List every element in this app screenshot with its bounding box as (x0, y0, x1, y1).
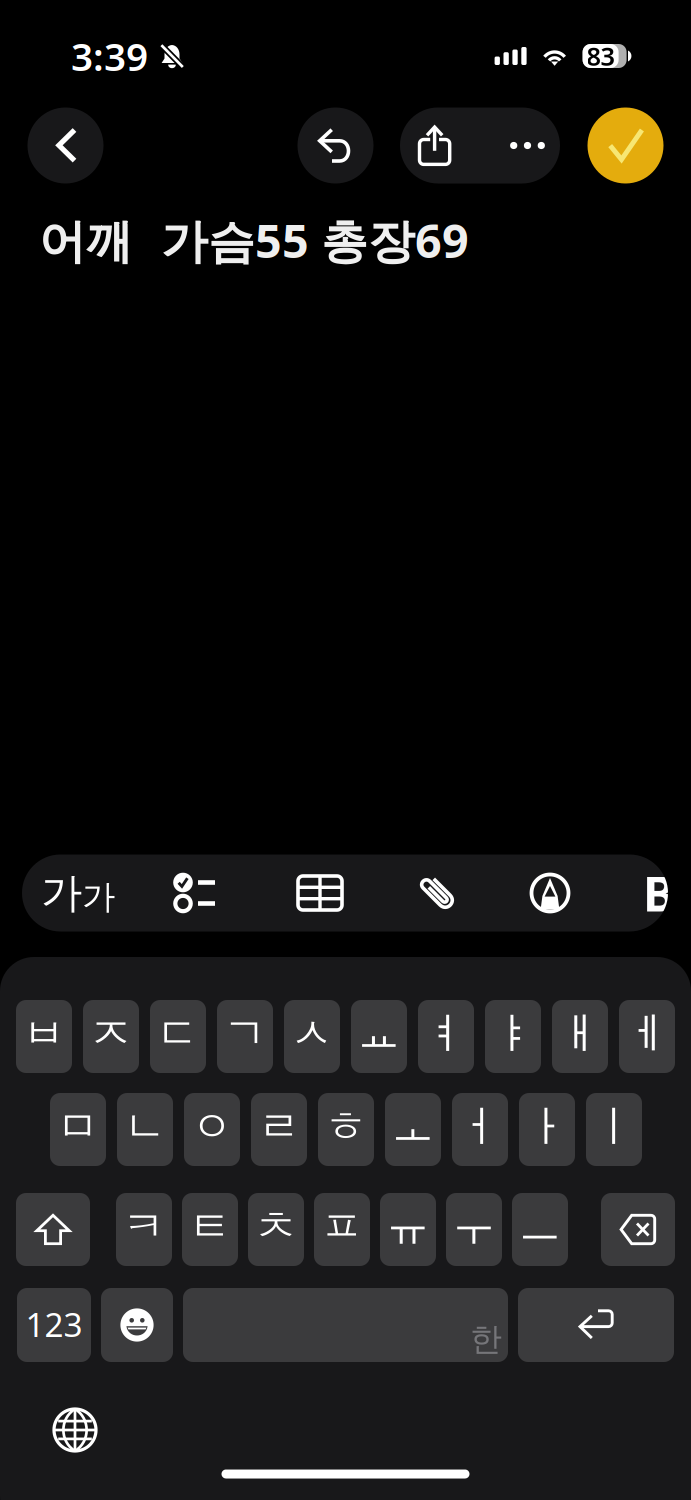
button[interactable]: ㅓ (452, 1093, 508, 1166)
button[interactable]: Checklist (139, 854, 249, 931)
staticText: 한 (470, 1320, 502, 1359)
button[interactable]: ㅏ (519, 1093, 575, 1166)
staticText: 123 (25, 1302, 82, 1346)
button[interactable]: 123 (17, 1288, 91, 1362)
button[interactable]: ㅔ (619, 1000, 675, 1073)
staticText: 가 (82, 876, 115, 917)
staticText: ㅜ (452, 1200, 495, 1253)
button[interactable]: ㅜ (446, 1193, 502, 1266)
staticText: ㅍ (320, 1200, 363, 1253)
button[interactable]: Undo (297, 107, 373, 183)
staticText: ㅔ (625, 1007, 668, 1060)
staticText: ㄹ (257, 1100, 300, 1153)
button[interactable]: ㅈ (83, 1000, 139, 1073)
staticText: ㄷ (156, 1007, 199, 1060)
button[interactable]: ㅐ (552, 1000, 608, 1073)
button[interactable]: ㅗ (385, 1093, 441, 1166)
button[interactable]: ㅍ (314, 1193, 370, 1266)
button[interactable]: Table (265, 854, 375, 931)
button[interactable]: More (491, 107, 563, 183)
button[interactable]: ㄹ (251, 1093, 307, 1166)
staticText: 가 (41, 868, 82, 918)
staticText: ㅗ (391, 1100, 434, 1153)
staticText: 어깨 가슴55 총장69 (39, 209, 469, 271)
staticText: ㅈ (89, 1007, 132, 1060)
button[interactable]: Emoji (101, 1288, 173, 1362)
button[interactable]: Bold (629, 854, 689, 931)
button[interactable]: Done (587, 107, 663, 183)
button[interactable]: ㅇ (184, 1093, 240, 1166)
staticText: B (643, 861, 675, 925)
button[interactable]: ㅊ (248, 1193, 304, 1266)
button[interactable]: ㅌ (182, 1193, 238, 1266)
button[interactable]: ㄷ (150, 1000, 206, 1073)
button[interactable]: ㄱ (217, 1000, 273, 1073)
staticText: 3:39 (71, 30, 148, 82)
staticText: ㅅ (290, 1007, 333, 1060)
button[interactable]: Delete (601, 1193, 675, 1266)
staticText: ㅑ (491, 1007, 534, 1060)
staticText: ㅐ (558, 1007, 601, 1060)
button[interactable]: ㅕ (418, 1000, 474, 1073)
button[interactable]: ㅎ (318, 1093, 374, 1166)
staticText: ㅛ (357, 1007, 400, 1060)
staticText: ㅊ (254, 1200, 297, 1253)
button[interactable]: ㅑ (485, 1000, 541, 1073)
button[interactable]: ㅠ (380, 1193, 436, 1266)
button[interactable]: ㅂ (16, 1000, 72, 1073)
button[interactable]: ㄴ (117, 1093, 173, 1166)
button[interactable]: ㅁ (50, 1093, 106, 1166)
button[interactable]: ㅅ (284, 1000, 340, 1073)
staticText: ㅌ (188, 1200, 231, 1253)
staticText: ㄱ (223, 1007, 266, 1060)
staticText: ㅋ (122, 1200, 165, 1253)
button[interactable]: Return (518, 1288, 674, 1362)
button[interactable]: Text format (23, 854, 133, 931)
staticText: ㅎ (324, 1100, 367, 1153)
staticText: ㅁ (56, 1100, 99, 1153)
button[interactable]: Back (27, 107, 103, 183)
staticText: ㅂ (22, 1007, 65, 1060)
button[interactable]: Markup (495, 854, 605, 931)
staticText: ㅕ (424, 1007, 467, 1060)
staticText: ㅣ (592, 1100, 635, 1153)
staticText: ㄴ (123, 1100, 166, 1153)
button[interactable]: ㅣ (586, 1093, 642, 1166)
button[interactable]: ㅋ (116, 1193, 172, 1266)
staticText: ㅡ (518, 1200, 561, 1253)
button[interactable]: Space (183, 1288, 508, 1362)
staticText: ㅏ (525, 1100, 568, 1153)
button[interactable]: ㅛ (351, 1000, 407, 1073)
button[interactable]: Shift (16, 1193, 90, 1266)
staticText: ㅠ (386, 1200, 429, 1253)
staticText: 83 (587, 39, 615, 73)
button[interactable]: Share (396, 107, 474, 183)
button[interactable]: Switch keyboard (45, 1400, 105, 1460)
button[interactable]: ㅡ (512, 1193, 568, 1266)
staticText: ㅇ (190, 1100, 233, 1153)
staticText: ㅓ (458, 1100, 501, 1153)
button[interactable]: Attach (383, 854, 493, 931)
